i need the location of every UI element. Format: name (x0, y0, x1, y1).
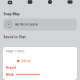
button[interactable]: Unfriend (3, 58, 77, 64)
button[interactable]: Block (3, 71, 77, 78)
button[interactable]: Video call (60, 0, 80, 7)
button[interactable]: Share My Live Location (3, 18, 77, 30)
staticText: Snap Map (3, 11, 19, 16)
staticText: Saved in Chat (3, 34, 25, 39)
button[interactable]: Chat (20, 0, 40, 7)
staticText: Block (6, 72, 14, 77)
button[interactable]: Camera (0, 0, 20, 7)
staticText: Share My Live Location (14, 23, 37, 26)
button[interactable]: Report (3, 64, 77, 71)
staticText: Manage Friendship (6, 49, 24, 53)
staticText: Report (6, 65, 16, 70)
staticText: Unfriend (21, 59, 30, 63)
button[interactable]: Call (40, 0, 60, 7)
